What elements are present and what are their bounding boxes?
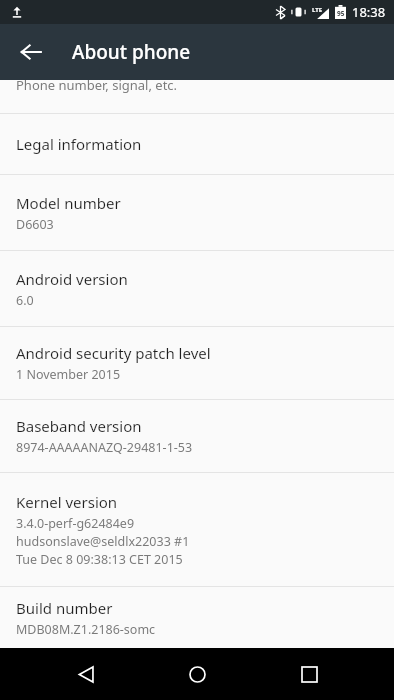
staticText: 95 xyxy=(337,9,345,18)
staticText: Baseband version xyxy=(16,416,142,436)
button[interactable]: Navigate up xyxy=(8,29,54,75)
staticText: About phone xyxy=(72,39,191,65)
button[interactable]: Baseband version xyxy=(0,400,394,472)
button[interactable]: Build number xyxy=(0,587,394,648)
staticText: Legal information xyxy=(16,134,142,154)
staticText: 1 November 2015 xyxy=(16,366,121,383)
staticText: Build number xyxy=(16,598,113,618)
button[interactable]: Recent apps xyxy=(283,648,335,700)
staticText: Model number xyxy=(16,193,121,213)
button[interactable]: Kernel version xyxy=(0,473,394,586)
staticText: 8974-AAAAANAZQ-29481-1-53 xyxy=(16,439,193,456)
button[interactable]: Model number xyxy=(0,175,394,250)
button[interactable]: Android version xyxy=(0,251,394,326)
button[interactable]: Legal information xyxy=(0,114,394,174)
staticText: hudsonslave@seldlx22033 #1 xyxy=(16,533,190,550)
staticText: 3.4.0-perf-g62484e9 xyxy=(16,515,135,532)
button[interactable]: Phone number, signal, etc. xyxy=(0,80,394,113)
staticText: Android security patch level xyxy=(16,343,211,363)
staticText: D6603 xyxy=(16,216,54,233)
staticText: LTE xyxy=(312,6,323,14)
staticText: 18:38 xyxy=(352,3,386,21)
button[interactable]: Home xyxy=(171,648,223,700)
staticText: Tue Dec 8 09:38:13 CET 2015 xyxy=(16,551,183,568)
staticText: Android version xyxy=(16,269,128,289)
button[interactable]: Android security patch level xyxy=(0,327,394,399)
staticText: Kernel version xyxy=(16,492,118,512)
staticText: Phone number, signal, etc. xyxy=(16,76,178,94)
button[interactable]: Back xyxy=(60,648,112,700)
staticText: MDB08M.Z1.2186-somc xyxy=(16,621,156,638)
staticText: 6.0 xyxy=(16,292,34,309)
